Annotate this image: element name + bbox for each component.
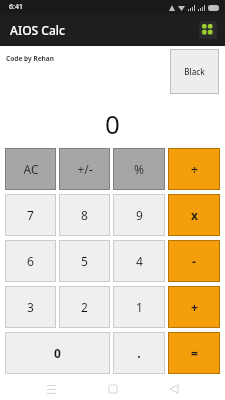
staticText: 0: [105, 106, 120, 141]
staticText: Black: [184, 66, 205, 77]
staticText: x: [191, 207, 198, 223]
button[interactable]: 0: [5, 332, 110, 374]
staticText: 1: [136, 299, 143, 315]
staticText: =: [191, 345, 198, 361]
staticText: .: [137, 345, 141, 361]
button[interactable]: 9: [113, 194, 165, 236]
button[interactable]: 4: [113, 240, 165, 282]
staticText: AC: [23, 161, 39, 177]
button[interactable]: 7: [5, 194, 56, 236]
button[interactable]: Home: [102, 378, 124, 400]
button[interactable]: Back: [163, 378, 185, 400]
staticText: 4: [136, 253, 143, 269]
button[interactable]: +: [168, 286, 220, 328]
button[interactable]: -: [168, 240, 220, 282]
button[interactable]: Apps grid: [199, 21, 217, 39]
button[interactable]: AC: [5, 148, 56, 190]
staticText: 9: [136, 207, 143, 223]
button[interactable]: =: [168, 332, 220, 374]
staticText: 0: [54, 345, 61, 361]
staticText: %: [134, 161, 144, 177]
button[interactable]: Black: [170, 49, 219, 94]
staticText: 6: [27, 253, 34, 269]
staticText: 7: [27, 207, 34, 223]
staticText: AIOS Calc: [10, 22, 65, 38]
button[interactable]: 3: [5, 286, 56, 328]
staticText: -: [192, 253, 196, 269]
button[interactable]: 8: [59, 194, 110, 236]
button[interactable]: x: [168, 194, 220, 236]
button[interactable]: .: [113, 332, 165, 374]
staticText: Code by Rehan: [6, 54, 54, 63]
staticText: 8: [81, 207, 88, 223]
button[interactable]: +/-: [59, 148, 110, 190]
button[interactable]: 1: [113, 286, 165, 328]
staticText: +: [191, 299, 198, 315]
button[interactable]: 5: [59, 240, 110, 282]
staticText: +/-: [77, 161, 93, 177]
button[interactable]: 6: [5, 240, 56, 282]
staticText: 2: [81, 299, 88, 315]
button[interactable]: %: [113, 148, 165, 190]
button[interactable]: ÷: [168, 148, 220, 190]
button[interactable]: 2: [59, 286, 110, 328]
staticText: 5: [81, 253, 88, 269]
staticText: 3: [27, 299, 34, 315]
button[interactable]: Recents: [40, 378, 62, 400]
staticText: 6:41: [9, 2, 23, 12]
staticText: ÷: [191, 161, 198, 177]
